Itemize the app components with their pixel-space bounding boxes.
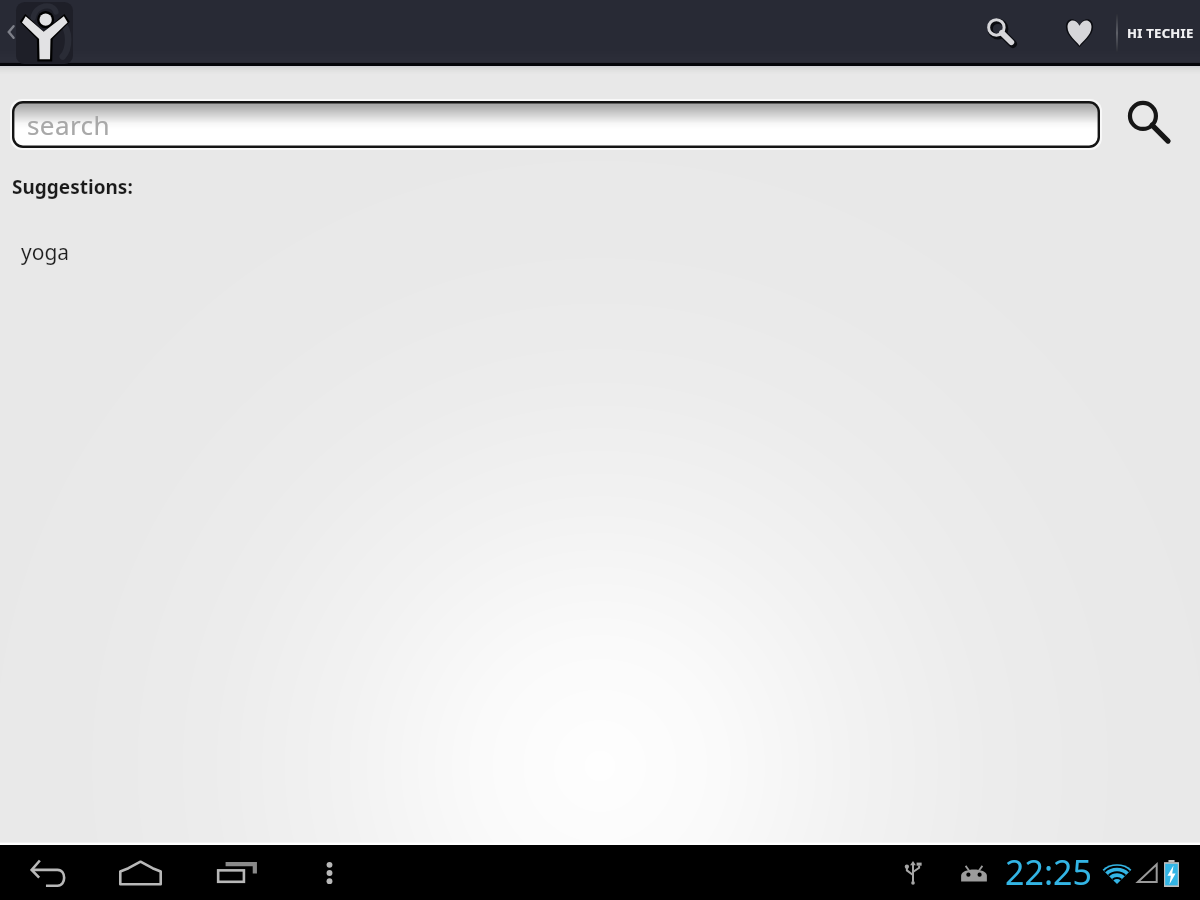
button[interactable]: Favourites (1057, 10, 1101, 54)
button[interactable]: search (12, 101, 1100, 148)
button[interactable]: Recent apps (210, 847, 262, 899)
button[interactable]: Search (975, 6, 1025, 56)
button[interactable]: HI TECHIE (1127, 24, 1194, 42)
staticText: yoga (21, 238, 70, 267)
button[interactable]: YMCA home (16, 2, 73, 64)
button[interactable]: Back (0, 20, 23, 44)
button[interactable]: Home (114, 847, 166, 899)
staticText: HI TECHIE (1127, 24, 1194, 42)
button[interactable]: yoga (0, 236, 1200, 284)
staticText: search (27, 107, 110, 142)
staticText: 22:25 (1005, 849, 1092, 895)
button[interactable]: Search (1122, 95, 1176, 149)
button[interactable]: Back (22, 847, 74, 899)
button[interactable]: More options (307, 851, 351, 895)
staticText: Suggestions: (12, 174, 133, 200)
